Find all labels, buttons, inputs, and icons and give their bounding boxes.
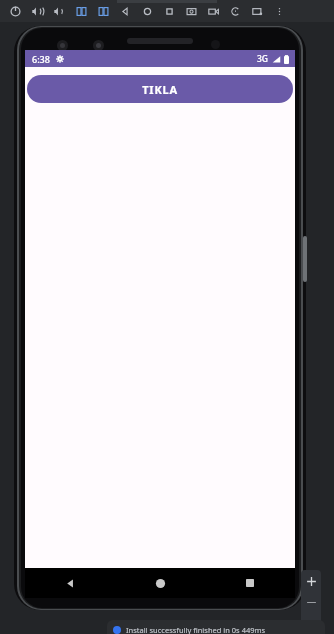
button[interactable]: Back (114, 0, 136, 22)
button[interactable]: Zoom out (301, 592, 321, 612)
button[interactable]: Home (136, 0, 158, 22)
button[interactable]: Volume down (48, 0, 70, 22)
button[interactable]: Home (115, 568, 205, 598)
button[interactable]: TIKLA (27, 75, 293, 103)
button[interactable]: Volume up (26, 0, 48, 22)
button[interactable]: Rotate right (92, 0, 114, 22)
button[interactable]: Back (25, 568, 115, 598)
button[interactable]: Zoom level (301, 612, 321, 632)
staticText: TIKLA (142, 82, 178, 97)
button[interactable]: History (224, 0, 246, 22)
button[interactable]: Overview (158, 0, 180, 22)
staticText: 1:1 (307, 618, 316, 626)
staticText: 3G (257, 53, 269, 65)
staticText: Install successfully finished in 0s 449m… (126, 625, 266, 634)
staticText: 6:38 (32, 53, 50, 65)
button[interactable]: Recent apps (205, 568, 295, 598)
button[interactable]: Record screen (202, 0, 224, 22)
button[interactable]: Install successfully finished in 0s 449m… (107, 620, 325, 634)
button[interactable]: Power (4, 0, 26, 22)
button[interactable]: Device settings (246, 0, 268, 22)
button[interactable]: More (268, 0, 290, 22)
button[interactable]: Screenshot (180, 0, 202, 22)
button[interactable]: Rotate left (70, 0, 92, 22)
button[interactable]: Zoom in (301, 570, 321, 592)
